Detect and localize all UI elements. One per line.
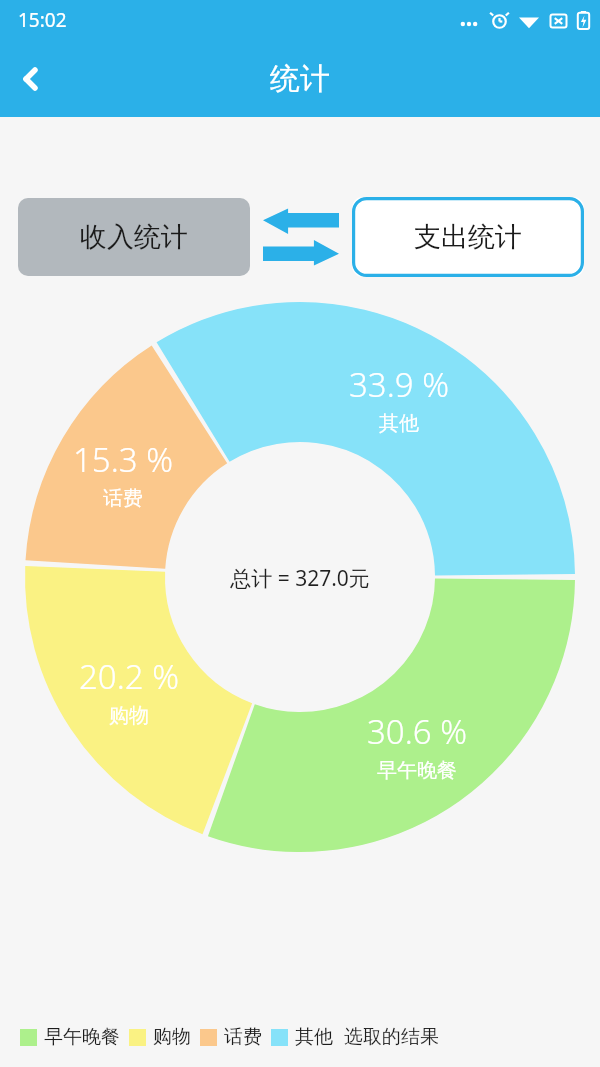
button[interactable]: 收入统计 <box>18 198 250 276</box>
staticText: 15.3 % <box>73 437 173 482</box>
button[interactable]: 支出统计 <box>352 197 584 277</box>
staticText: 15:02 <box>18 7 67 33</box>
staticText: 33.9 % <box>349 362 449 407</box>
staticText: 早午晚餐 <box>44 1025 120 1049</box>
staticText: 购物 <box>109 703 149 728</box>
staticText: 30.6 % <box>367 709 467 754</box>
button[interactable]: Swap <box>262 198 340 276</box>
staticText: 统计 <box>270 60 330 98</box>
staticText: 早午晚餐 <box>377 758 457 783</box>
staticText: 收入统计 <box>80 220 188 254</box>
staticText: 其他 <box>295 1025 333 1049</box>
staticText: 总计 = 327.0元 <box>0 564 600 593</box>
staticText: 话费 <box>103 486 143 511</box>
button[interactable]: Back <box>0 47 64 111</box>
staticText: 支出统计 <box>414 220 522 254</box>
staticText: 话费 <box>224 1025 262 1049</box>
staticText: 购物 <box>153 1025 191 1049</box>
staticText: 选取的结果 <box>344 1025 439 1049</box>
staticText: 20.2 % <box>79 654 179 699</box>
staticText: 其他 <box>379 411 419 436</box>
